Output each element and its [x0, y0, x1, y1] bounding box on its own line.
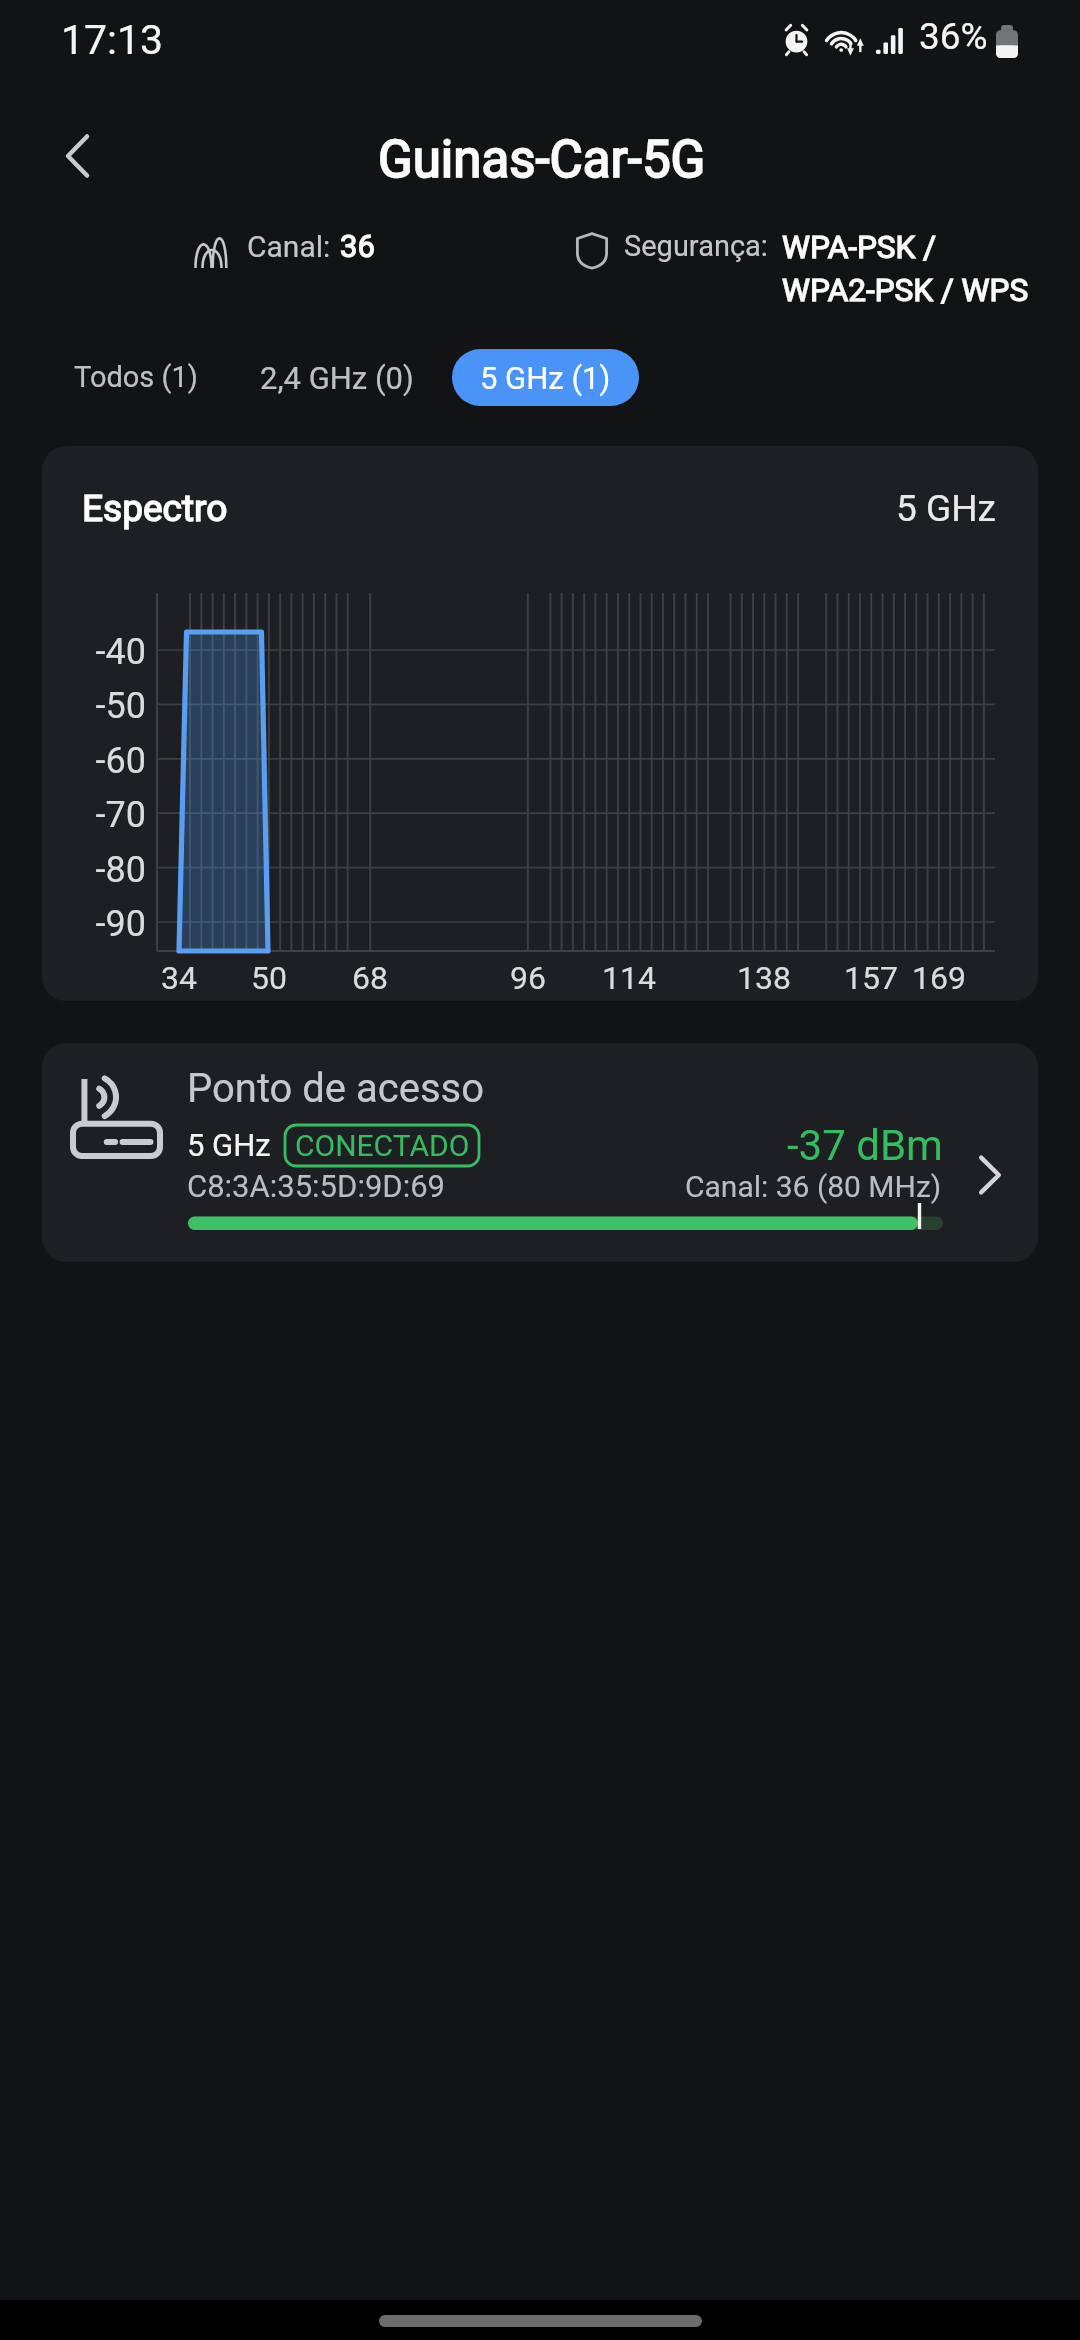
- staticText: 34: [134, 959, 224, 997]
- staticText: -60: [56, 740, 146, 782]
- staticText: Todos (1): [74, 360, 198, 394]
- staticText: 17:13: [61, 16, 164, 64]
- staticText: 114: [584, 959, 674, 997]
- staticText: 50: [224, 959, 314, 997]
- staticText: 5 GHz (1): [480, 360, 611, 396]
- staticText: -70: [56, 794, 146, 836]
- staticText: -80: [56, 849, 146, 891]
- staticText: 36: [340, 228, 375, 264]
- button[interactable]: Ponto de acesso: [42, 1043, 1038, 1262]
- staticText: 68: [325, 959, 415, 997]
- staticText: 2,4 GHz (0): [260, 360, 414, 396]
- staticText: 169: [894, 959, 984, 997]
- staticText: Ponto de acesso: [187, 1065, 485, 1112]
- staticText: C8:3A:35:5D:9D:69: [187, 1168, 446, 1204]
- staticText: CONECTADO: [295, 1128, 470, 1163]
- staticText: -50: [56, 685, 146, 727]
- button[interactable]: Todos (1): [54, 348, 218, 406]
- staticText: 5 GHz: [896, 487, 996, 530]
- staticText: Guinas-Car-5G: [378, 130, 706, 190]
- staticText: Canal:: [247, 229, 331, 264]
- staticText: Segurança:: [624, 229, 776, 263]
- staticText: -90: [56, 903, 146, 945]
- staticText: 36%: [919, 15, 988, 58]
- button[interactable]: Details: [954, 1139, 1026, 1211]
- staticText: 96: [483, 959, 573, 997]
- button[interactable]: 2,4 GHz (0): [240, 348, 434, 408]
- button[interactable]: Back: [24, 104, 128, 208]
- button[interactable]: 5 GHz (1): [452, 349, 639, 406]
- staticText: 5 GHz: [187, 1127, 271, 1163]
- staticText: Canal: 36 (80 MHz): [685, 1169, 942, 1204]
- staticText: Espectro: [82, 487, 228, 530]
- staticText: 157: [826, 959, 916, 997]
- staticText: WPA-PSK / WPA2-PSK / WPS: [782, 229, 1029, 309]
- staticText: -40: [56, 631, 146, 673]
- staticText: 138: [719, 959, 809, 997]
- staticText: -37 dBm: [787, 1121, 943, 1170]
